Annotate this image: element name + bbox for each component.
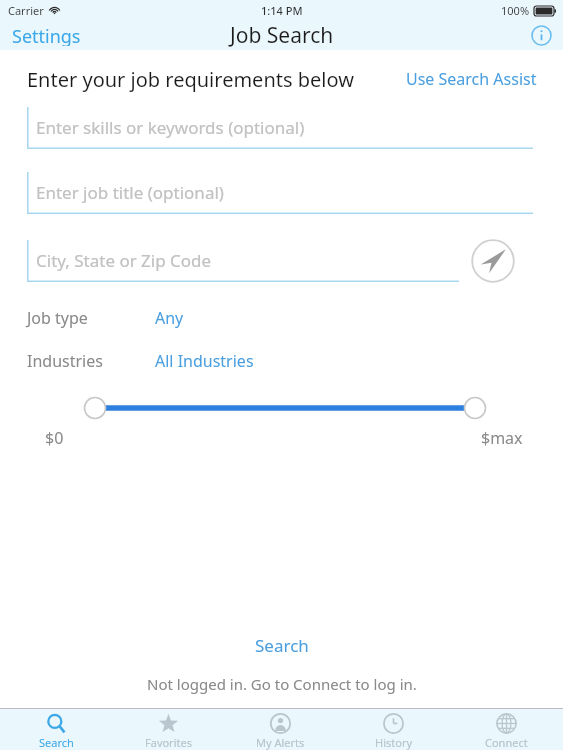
button[interactable]: Use Search Assist [402,64,541,94]
staticText: History [375,735,413,750]
button[interactable]: Settings [0,20,89,50]
button[interactable]: History [337,710,450,750]
button[interactable]: Favorites [112,710,224,750]
staticText: Favorites [145,735,192,750]
staticText: Job Search [230,21,334,50]
button[interactable]: All Industries [153,347,256,375]
staticText: Enter your job requirements below [27,66,354,93]
button[interactable]: Enter skills or keywords (optional) [27,107,533,149]
staticText: Any [155,307,184,329]
staticText: Job type [27,307,88,329]
button[interactable]: Info [529,23,553,47]
staticText: $max [481,427,523,449]
staticText: Enter job title (optional) [36,181,224,204]
button[interactable]: Use current location [469,237,517,285]
staticText: All Industries [155,350,254,372]
staticText: Connect [485,735,528,750]
staticText: $0 [45,427,64,449]
button[interactable]: City, State or Zip Code [27,240,459,282]
staticText: Enter skills or keywords (optional) [36,116,305,139]
button[interactable]: Search [0,630,563,660]
staticText: Search [39,735,74,750]
staticText: Search [255,634,309,657]
button[interactable]: Any [153,304,186,332]
staticText: My Alerts [256,735,305,750]
staticText: City, State or Zip Code [36,249,212,272]
staticText: 1:14 PM [261,3,303,18]
staticText: Carrier [8,3,44,18]
staticText: 100% [501,3,530,18]
button[interactable]: My Alerts [224,710,337,750]
staticText: Not logged in. Go to Connect to log in. [147,674,417,694]
button[interactable]: Search [0,710,112,750]
staticText: Use Search Assist [406,68,537,90]
staticText: Settings [12,24,81,46]
button[interactable]: Enter job title (optional) [27,172,533,214]
button[interactable]: Connect [450,710,563,750]
staticText: Industries [27,350,103,372]
